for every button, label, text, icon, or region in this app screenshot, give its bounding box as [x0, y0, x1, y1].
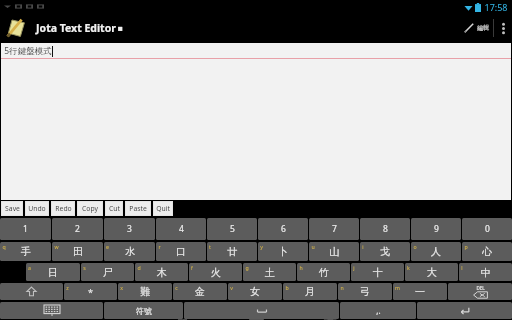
staticText: 5: [230, 223, 235, 235]
button[interactable]: k: [405, 263, 458, 281]
button[interactable]: f: [189, 263, 242, 281]
staticText: 廿: [227, 245, 237, 258]
staticText: 山: [329, 245, 339, 258]
staticText: m: [395, 284, 400, 291]
button[interactable]: Undo: [25, 201, 49, 216]
staticText: 口: [176, 245, 186, 258]
button[interactable]: u: [309, 242, 359, 261]
button[interactable]: 4: [156, 218, 206, 240]
button[interactable]: Redo: [51, 201, 75, 216]
staticText: Cut: [109, 204, 120, 213]
staticText: 水: [125, 245, 135, 258]
staticText: 4: [179, 223, 184, 235]
staticText: 17:58: [484, 1, 508, 13]
staticText: h: [299, 264, 303, 271]
staticText: Save: [5, 204, 20, 213]
staticText: x: [120, 284, 123, 291]
button[interactable]: Enter: [417, 302, 512, 319]
staticText: y: [260, 243, 263, 250]
staticText: 9: [434, 223, 439, 235]
staticText: j: [353, 264, 355, 271]
button[interactable]: w: [52, 242, 103, 261]
button[interactable]: x: [118, 283, 172, 300]
button[interactable]: d: [135, 263, 188, 281]
button[interactable]: y: [258, 242, 308, 261]
button[interactable]: Copy: [77, 201, 103, 216]
staticText: 編輯: [477, 24, 489, 32]
button[interactable]: More options: [494, 13, 512, 43]
button[interactable]: Delete: [448, 283, 512, 300]
staticText: 卜: [278, 245, 288, 258]
button[interactable]: l: [459, 263, 512, 281]
staticText: 2: [75, 223, 80, 235]
staticText: g: [245, 264, 249, 271]
staticText: Redo: [55, 204, 72, 213]
staticText: 土: [265, 266, 275, 279]
staticText: v: [230, 284, 233, 291]
button[interactable]: Quit: [153, 201, 173, 216]
staticText: w: [54, 243, 59, 250]
staticText: Jota Text Editor: [36, 21, 116, 35]
button[interactable]: t: [207, 242, 257, 261]
staticText: 火: [211, 266, 221, 279]
staticText: ▪: [117, 24, 123, 33]
button[interactable]: Save: [1, 201, 23, 216]
staticText: 戈: [380, 245, 390, 258]
button[interactable]: j: [351, 263, 404, 281]
button[interactable]: 0: [462, 218, 512, 240]
button[interactable]: Shift: [0, 283, 63, 300]
staticText: t: [209, 243, 211, 250]
button[interactable]: e: [104, 242, 155, 261]
button[interactable]: h: [297, 263, 350, 281]
button[interactable]: z: [64, 283, 117, 300]
button[interactable]: p: [462, 242, 512, 261]
staticText: u: [311, 243, 315, 250]
button[interactable]: n: [338, 283, 392, 300]
button[interactable]: 符號: [104, 302, 183, 319]
staticText: 符號: [136, 306, 152, 316]
button[interactable]: i: [360, 242, 410, 261]
button[interactable]: 5行鍵盤模式: [1, 43, 511, 200]
button[interactable]: Edit: [459, 22, 493, 34]
staticText: p: [464, 243, 468, 250]
button[interactable]: Cut: [105, 201, 123, 216]
button[interactable]: Space: [184, 302, 339, 319]
staticText: 8: [383, 223, 388, 235]
button[interactable]: 7: [309, 218, 359, 240]
button[interactable]: s: [81, 263, 134, 281]
button[interactable]: ,.: [340, 302, 416, 319]
button[interactable]: m: [393, 283, 447, 300]
button[interactable]: o: [411, 242, 461, 261]
button[interactable]: 9: [411, 218, 461, 240]
button[interactable]: Switch keyboard: [0, 302, 103, 319]
button[interactable]: b: [283, 283, 337, 300]
button[interactable]: g: [243, 263, 296, 281]
button[interactable]: v: [228, 283, 282, 300]
button[interactable]: 2: [52, 218, 103, 240]
staticText: c: [175, 284, 178, 291]
button[interactable]: a: [26, 263, 80, 281]
staticText: f: [191, 264, 193, 271]
button[interactable]: Paste: [125, 201, 151, 216]
staticText: o: [413, 243, 417, 250]
staticText: a: [28, 264, 31, 271]
staticText: DEL: [476, 285, 485, 291]
staticText: 手: [21, 245, 31, 258]
button[interactable]: 1: [0, 218, 51, 240]
button[interactable]: r: [156, 242, 206, 261]
staticText: 月: [305, 285, 315, 298]
staticText: 0: [485, 223, 490, 235]
button[interactable]: 6: [258, 218, 308, 240]
staticText: 3: [127, 223, 132, 235]
button[interactable]: 3: [104, 218, 155, 240]
button[interactable]: 8: [360, 218, 410, 240]
staticText: d: [137, 264, 141, 271]
button[interactable]: c: [173, 283, 227, 300]
staticText: b: [285, 284, 289, 291]
staticText: 竹: [319, 266, 329, 279]
button[interactable]: 5: [207, 218, 257, 240]
staticText: 5行鍵盤模式: [4, 45, 52, 57]
staticText: Paste: [129, 204, 147, 213]
button[interactable]: q: [0, 242, 51, 261]
staticText: 女: [250, 285, 260, 298]
